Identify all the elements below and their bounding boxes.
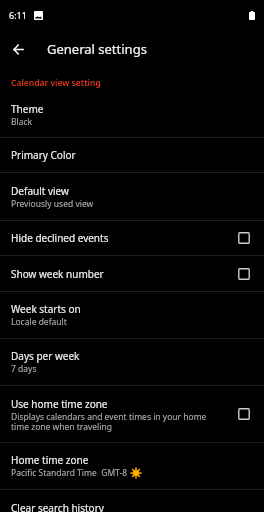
staticText: Primary Color (11, 148, 76, 162)
button[interactable]: Hide declined events (0, 221, 264, 256)
staticText: Locale default (11, 316, 67, 328)
staticText: Show week number (11, 267, 104, 281)
staticText: Calendar view setting (11, 77, 101, 89)
staticText: Previously used view (11, 198, 94, 210)
staticText: Hide declined events (11, 231, 109, 245)
button[interactable]: Home time zone (0, 443, 264, 490)
staticText: 7 days (11, 363, 37, 375)
button[interactable]: Primary Color (0, 138, 264, 173)
button[interactable]: Use home time zone (0, 386, 264, 443)
button[interactable]: Back (0, 24, 36, 74)
staticText: Week starts on (11, 302, 81, 316)
button[interactable]: Week starts on (0, 292, 264, 339)
staticText: Theme (11, 102, 44, 116)
button[interactable]: Clear search history (0, 490, 264, 512)
staticText: Displays calendars and event times in yo… (11, 411, 210, 432)
staticText: Days per week (11, 349, 80, 363)
staticText: Black (11, 116, 33, 128)
button[interactable]: Show week number (0, 256, 264, 292)
button[interactable]: Days per week (0, 339, 264, 386)
staticText: Clear search history (11, 501, 104, 512)
button[interactable]: Theme (0, 92, 264, 138)
staticText: 6:11 (9, 9, 27, 21)
staticText: General settings (47, 40, 147, 58)
staticText: Default view (11, 184, 69, 198)
button[interactable]: Default view (0, 173, 264, 221)
staticText: Home time zone (11, 453, 89, 467)
staticText: Use home time zone (11, 397, 108, 411)
staticText: Pacific Standard Time GMT-8 (11, 467, 128, 479)
